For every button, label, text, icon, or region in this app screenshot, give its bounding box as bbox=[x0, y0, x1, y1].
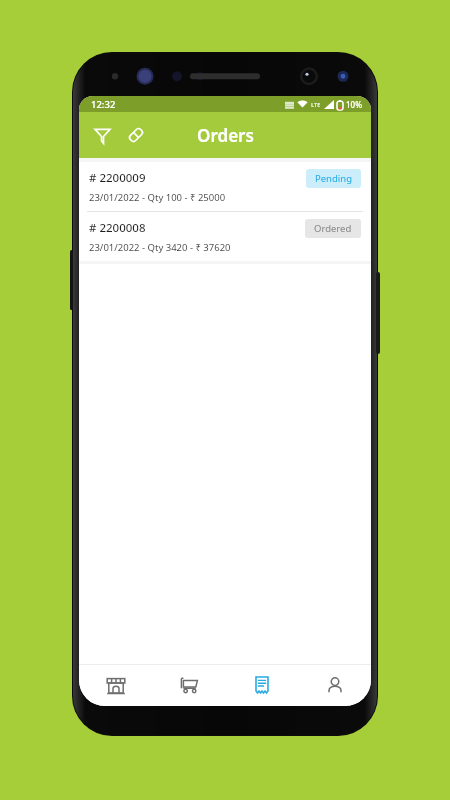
staticText: 23/01/2022 - Qty 3420 - ₹ 37620 bbox=[89, 241, 231, 254]
button[interactable]: # 2200009 bbox=[79, 162, 371, 211]
button[interactable]: # 2200008 bbox=[79, 212, 371, 261]
button[interactable]: Ordered bbox=[305, 219, 361, 238]
staticText: Orders bbox=[197, 124, 254, 147]
staticText: LTE bbox=[311, 101, 321, 108]
staticText: 12:32 bbox=[91, 98, 116, 111]
button[interactable]: Orders bbox=[225, 664, 298, 706]
staticText: # 2200009 bbox=[89, 170, 146, 186]
staticText: 23/01/2022 - Qty 100 - ₹ 25000 bbox=[89, 191, 226, 204]
button[interactable]: Clear filters bbox=[119, 118, 153, 152]
button[interactable]: Filter bbox=[85, 118, 119, 152]
button[interactable]: Pending bbox=[306, 169, 361, 188]
staticText: # 2200008 bbox=[89, 220, 146, 236]
staticText: 10% bbox=[346, 99, 362, 110]
staticText: Ordered bbox=[314, 222, 352, 235]
button[interactable]: Cart bbox=[152, 664, 225, 706]
button[interactable]: Profile bbox=[298, 664, 371, 706]
staticText: Pending bbox=[315, 172, 352, 185]
button[interactable]: Store bbox=[79, 664, 152, 706]
